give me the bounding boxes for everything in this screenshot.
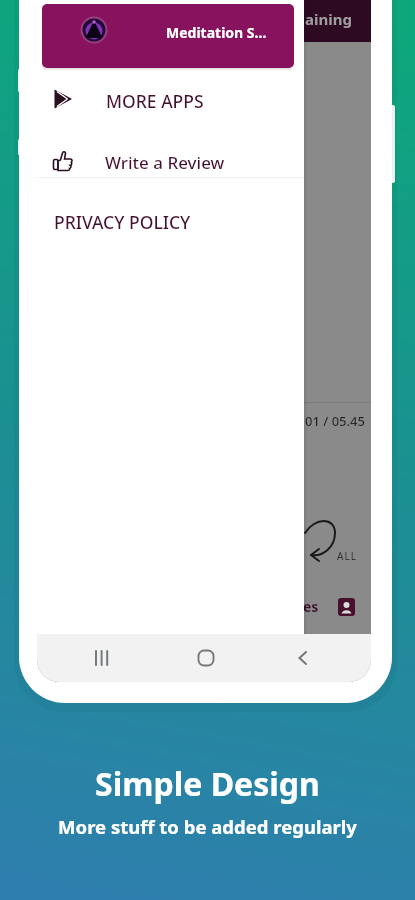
staticText: 01 / 05.45 xyxy=(305,412,365,430)
staticText: Meditation S... xyxy=(166,23,267,42)
staticText: MORE APPS xyxy=(106,89,204,113)
button[interactable]: MORE APPS xyxy=(37,82,304,120)
staticText: PRIVACY POLICY xyxy=(54,210,191,234)
staticText: aining xyxy=(305,9,352,29)
staticText: es xyxy=(303,597,319,616)
staticText: More stuff to be added regularly xyxy=(58,814,357,839)
button[interactable] xyxy=(285,640,321,676)
button[interactable]: Meditation S... xyxy=(42,4,294,68)
button[interactable] xyxy=(188,640,224,676)
staticText: ALL xyxy=(337,549,357,563)
staticText: Simple Design xyxy=(95,762,320,806)
staticText: Write a Review xyxy=(105,151,225,174)
button[interactable]: PRIVACY POLICY xyxy=(37,203,304,240)
button[interactable] xyxy=(84,640,120,676)
button[interactable]: Write a Review xyxy=(37,143,304,181)
